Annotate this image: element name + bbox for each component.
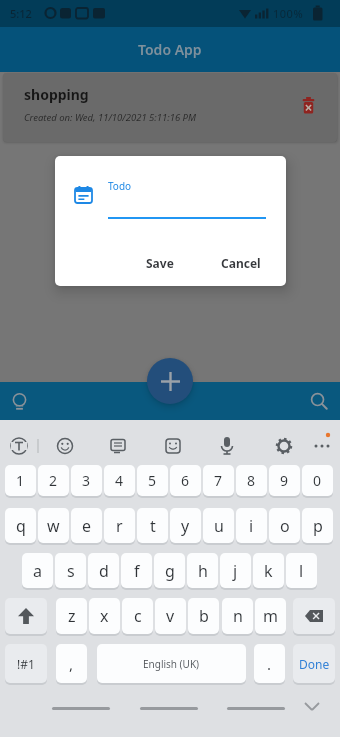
staticText: q bbox=[16, 515, 26, 537]
staticText: v bbox=[166, 605, 175, 627]
staticText: . bbox=[267, 654, 272, 674]
button[interactable] bbox=[302, 97, 315, 114]
button[interactable]: c bbox=[122, 598, 153, 634]
button[interactable] bbox=[4, 428, 34, 464]
staticText: h bbox=[198, 560, 208, 582]
button[interactable]: Save bbox=[146, 255, 174, 271]
staticText: s bbox=[67, 560, 75, 582]
staticText: 100% bbox=[273, 6, 304, 21]
staticText: d bbox=[99, 560, 109, 582]
staticText: 5:12 bbox=[10, 6, 32, 21]
staticText: e bbox=[82, 515, 92, 537]
button[interactable]: shopping bbox=[3, 73, 337, 142]
button[interactable] bbox=[158, 428, 188, 464]
staticText: p bbox=[313, 515, 323, 537]
button[interactable]: j bbox=[220, 553, 251, 588]
button[interactable] bbox=[103, 428, 133, 464]
button[interactable]: m bbox=[255, 598, 286, 634]
button[interactable]: 1 bbox=[5, 465, 36, 496]
button[interactable] bbox=[307, 428, 337, 464]
button[interactable] bbox=[310, 392, 328, 410]
staticText: n bbox=[233, 605, 243, 627]
button[interactable]: u bbox=[203, 508, 234, 543]
button[interactable]: z bbox=[56, 598, 87, 634]
staticText: Created on: Wed, 11/10/2021 5:11:16 PM bbox=[24, 111, 196, 124]
staticText: !#1 bbox=[17, 656, 35, 672]
button[interactable]: o bbox=[269, 508, 300, 543]
button[interactable]: f bbox=[121, 553, 152, 588]
button[interactable]: Done bbox=[293, 644, 335, 683]
button[interactable]: Cancel bbox=[221, 255, 261, 271]
button[interactable]: y bbox=[170, 508, 201, 543]
button[interactable] bbox=[212, 428, 242, 464]
button[interactable]: d bbox=[88, 553, 119, 588]
staticText: w bbox=[47, 515, 60, 537]
button[interactable]: v bbox=[155, 598, 186, 634]
button[interactable]: 6 bbox=[170, 465, 201, 496]
button[interactable]: x bbox=[89, 598, 120, 634]
button[interactable]: t bbox=[137, 508, 168, 543]
button[interactable]: 3 bbox=[71, 465, 102, 496]
button[interactable]: r bbox=[104, 508, 135, 543]
staticText: , bbox=[69, 654, 74, 674]
button[interactable] bbox=[269, 428, 299, 464]
staticText: Done bbox=[299, 656, 330, 672]
button[interactable]: p bbox=[302, 508, 333, 543]
staticText: u bbox=[214, 515, 224, 537]
button[interactable]: 8 bbox=[236, 465, 267, 496]
staticText: 5 bbox=[148, 471, 157, 490]
button[interactable]: 0 bbox=[302, 465, 333, 496]
button[interactable]: n bbox=[222, 598, 253, 634]
button[interactable] bbox=[5, 598, 47, 634]
button[interactable]: English (UK) bbox=[97, 644, 246, 683]
staticText: r bbox=[116, 515, 123, 537]
button[interactable]: w bbox=[38, 508, 69, 543]
staticText: t bbox=[150, 515, 156, 537]
staticText: Save bbox=[146, 255, 174, 271]
button[interactable]: 5 bbox=[137, 465, 168, 496]
button[interactable]: b bbox=[188, 598, 219, 634]
staticText: z bbox=[68, 605, 76, 627]
staticText: 3 bbox=[82, 471, 91, 490]
button[interactable]: e bbox=[71, 508, 102, 543]
button[interactable]: 2 bbox=[38, 465, 69, 496]
staticText: 6 bbox=[181, 471, 190, 490]
button[interactable]: k bbox=[253, 553, 284, 588]
button[interactable]: l bbox=[286, 553, 317, 588]
button[interactable]: q bbox=[5, 508, 36, 543]
staticText: x bbox=[100, 605, 109, 627]
button[interactable]: g bbox=[154, 553, 185, 588]
staticText: shopping bbox=[24, 85, 89, 104]
button[interactable]: 4 bbox=[104, 465, 135, 496]
button[interactable] bbox=[50, 428, 80, 464]
staticText: 2 bbox=[49, 471, 58, 490]
button[interactable]: a bbox=[22, 553, 53, 588]
button[interactable]: s bbox=[55, 553, 86, 588]
staticText: c bbox=[134, 605, 142, 627]
staticText: k bbox=[264, 560, 273, 582]
staticText: Cancel bbox=[221, 255, 261, 271]
staticText: English (UK) bbox=[143, 657, 200, 671]
staticText: f bbox=[134, 560, 140, 582]
button[interactable]: 7 bbox=[203, 465, 234, 496]
staticText: Todo App bbox=[138, 40, 202, 59]
staticText: 9 bbox=[280, 471, 289, 490]
button[interactable]: 9 bbox=[269, 465, 300, 496]
staticText: l bbox=[299, 560, 304, 582]
staticText: 8 bbox=[247, 471, 256, 490]
staticText: Todo bbox=[108, 179, 132, 193]
button[interactable]: i bbox=[236, 508, 267, 543]
staticText: o bbox=[280, 515, 290, 537]
button[interactable]: !#1 bbox=[5, 644, 47, 683]
button[interactable] bbox=[293, 598, 335, 634]
staticText: 4 bbox=[115, 471, 124, 490]
staticText: 1 bbox=[16, 471, 25, 490]
staticText: j bbox=[233, 560, 238, 582]
button[interactable]: , bbox=[56, 644, 87, 683]
button[interactable]: . bbox=[254, 644, 285, 683]
button[interactable] bbox=[11, 393, 28, 410]
button[interactable] bbox=[147, 358, 193, 404]
staticText: a bbox=[33, 560, 42, 582]
staticText: 0 bbox=[313, 471, 322, 490]
button[interactable]: h bbox=[187, 553, 218, 588]
